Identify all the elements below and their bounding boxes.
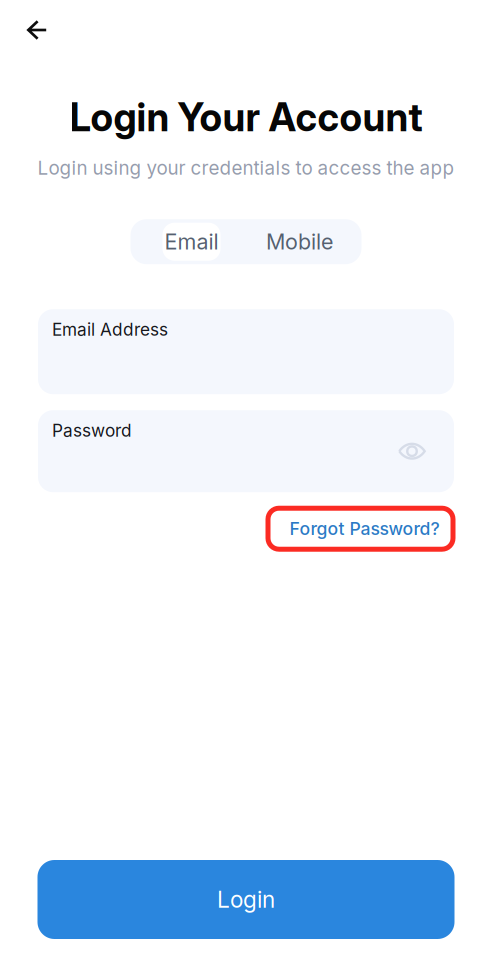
button[interactable]: Forgot Password? xyxy=(263,503,454,554)
staticText: Mobile xyxy=(266,229,333,255)
staticText: Login Your Account xyxy=(69,94,422,140)
staticText: Email xyxy=(164,229,218,255)
staticText: Login xyxy=(217,886,275,913)
staticText: Forgot Password? xyxy=(289,518,439,539)
button[interactable]: Back xyxy=(14,8,60,52)
staticText: Email Address xyxy=(52,319,168,340)
button[interactable]: Mobile xyxy=(265,223,333,261)
button[interactable]: Email xyxy=(162,223,220,261)
button[interactable]: Login xyxy=(37,860,454,939)
staticText: Password xyxy=(52,420,132,441)
staticText: Login using your credentials to access t… xyxy=(37,156,454,179)
button[interactable]: Show password xyxy=(389,431,454,471)
